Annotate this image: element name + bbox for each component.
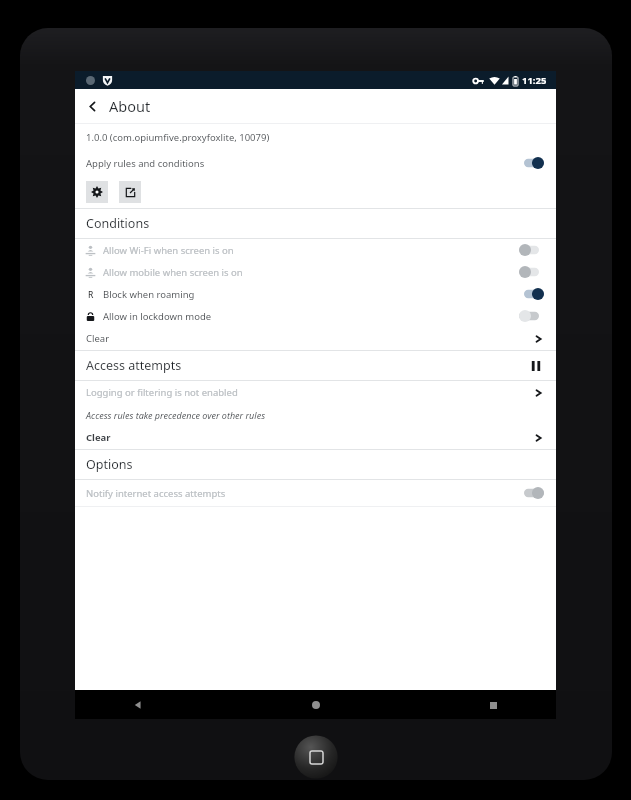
staticText: Logging or filtering is not enabled [86,386,238,399]
button[interactable]: R [75,283,556,305]
staticText: Allow mobile when screen is on [103,266,243,279]
staticText: R [88,289,94,301]
button[interactable]: Toggle off [519,486,544,500]
button[interactable]: Clear [75,327,556,350]
staticText: Block when roaming [103,288,195,301]
staticText: Allow Wi-Fi when screen is on [103,244,234,257]
staticText: Options [86,456,133,473]
button[interactable]: Back [75,89,109,123]
staticText: 11:25 [522,74,547,87]
staticText: Clear [86,332,110,345]
staticText: Notify internet access attempts [86,487,226,500]
button[interactable]: Toggle on [519,156,544,170]
button[interactable]: Allow in lockdown mode [75,305,556,327]
button[interactable]: Clear [75,426,556,449]
button[interactable]: Toggle off [519,309,544,323]
button[interactable]: Allow mobile when screen is on [75,261,556,283]
staticText: 1.0.0 (com.opiumfive.proxyfoxlite, 10079… [86,131,270,144]
button[interactable]: Toggle on [519,287,544,301]
staticText: Access rules take precedence over other … [86,409,266,421]
button[interactable]: Settings [86,181,108,203]
staticText: Apply rules and conditions [86,157,205,170]
button[interactable]: Open externally [119,181,141,203]
button[interactable]: Toggle off [519,265,544,279]
button[interactable]: Notify internet access attempts [75,480,556,506]
staticText: Access attempts [86,357,182,374]
button[interactable]: Toggle off [519,243,544,257]
button[interactable]: Home [303,692,329,718]
button[interactable]: Pause [525,355,547,377]
button[interactable]: Logging or filtering is not enabled [75,381,556,404]
button[interactable]: Allow Wi-Fi when screen is on [75,239,556,261]
staticText: Conditions [86,215,150,232]
button[interactable]: Recents [480,692,506,718]
staticText: Clear [86,431,111,444]
staticText: About [109,96,151,116]
button[interactable]: Back [125,692,151,718]
button[interactable]: Apply rules and conditions [75,151,556,175]
staticText: Allow in lockdown mode [103,310,212,323]
